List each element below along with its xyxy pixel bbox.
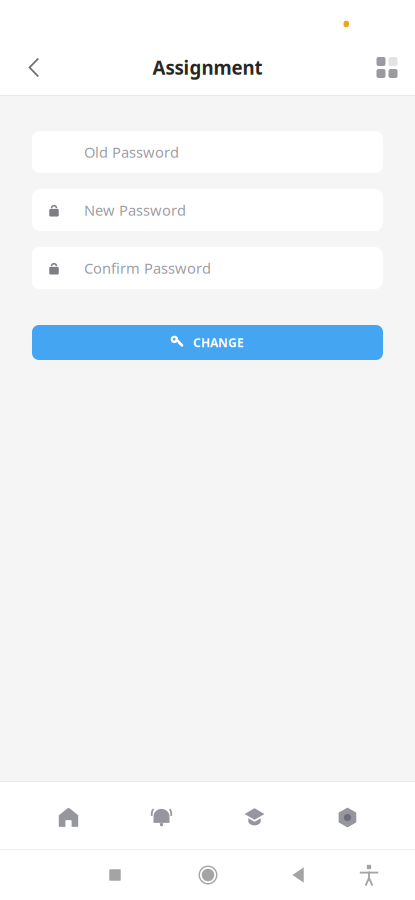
staticText: Assignment xyxy=(152,55,262,80)
staticText: New Password xyxy=(84,200,186,220)
staticText: Old Password xyxy=(84,142,179,162)
button[interactable]: Home xyxy=(184,850,232,899)
button[interactable]: Grid layout xyxy=(365,45,409,89)
button[interactable]: Back xyxy=(274,850,322,899)
button[interactable]: Back xyxy=(12,45,56,89)
button[interactable]: CHANGE xyxy=(32,325,383,360)
button[interactable]: Home xyxy=(22,784,115,851)
staticText: CHANGE xyxy=(193,334,244,350)
button[interactable]: Recent apps xyxy=(91,850,139,899)
staticText: Confirm Password xyxy=(84,258,211,278)
button[interactable]: Accessibility xyxy=(345,850,393,899)
button[interactable]: Courses xyxy=(208,784,301,851)
button[interactable]: Settings xyxy=(301,784,394,851)
button[interactable]: Notifications xyxy=(115,784,208,851)
